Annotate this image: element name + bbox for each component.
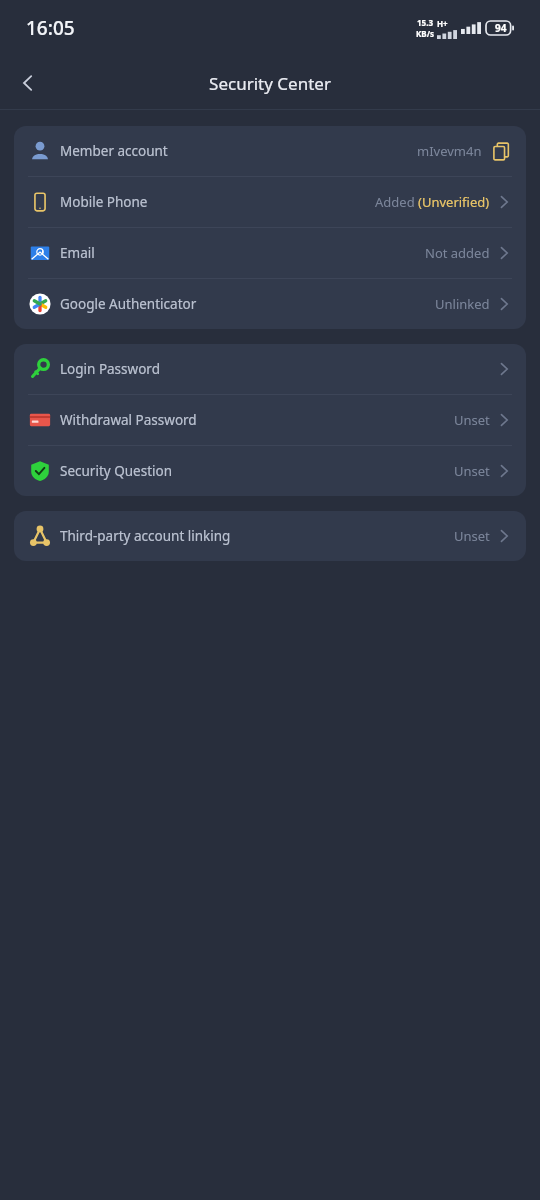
staticText: 16:05 [26, 15, 75, 41]
staticText: 94 [495, 21, 507, 35]
staticText: Mobile Phone [60, 193, 148, 211]
staticText: Withdrawal Password [60, 411, 197, 429]
staticText: Third-party account linking [60, 527, 231, 545]
staticText: Unset [454, 411, 490, 429]
staticText: Not added [425, 244, 490, 262]
staticText: Unset [454, 462, 490, 480]
staticText: mIvevm4n [417, 142, 482, 160]
staticText: Member account [60, 142, 168, 160]
staticText: Added (Unverified) [375, 193, 490, 211]
staticText: Security Center [209, 72, 331, 95]
button[interactable]: Google Authenticator [14, 279, 526, 329]
button[interactable]: Security Question [14, 446, 526, 496]
staticText: Email [60, 244, 95, 262]
button[interactable]: Member account [14, 126, 526, 176]
button[interactable]: Login Password [14, 344, 526, 394]
staticText: Unset [454, 527, 490, 545]
staticText: H+ [437, 18, 448, 29]
button[interactable]: Email [14, 228, 526, 278]
staticText: Google Authenticator [60, 295, 197, 313]
staticText: Unlinked [435, 295, 490, 313]
button[interactable]: Copy [490, 140, 512, 162]
button[interactable]: Back [6, 61, 50, 105]
staticText: Login Password [60, 360, 160, 378]
button[interactable]: Third-party account linking [14, 511, 526, 561]
staticText: 15.3 [417, 17, 433, 28]
button[interactable]: Mobile Phone [14, 177, 526, 227]
staticText: KB/s [416, 28, 434, 39]
button[interactable]: Withdrawal Password [14, 395, 526, 445]
staticText: Security Question [60, 462, 173, 480]
